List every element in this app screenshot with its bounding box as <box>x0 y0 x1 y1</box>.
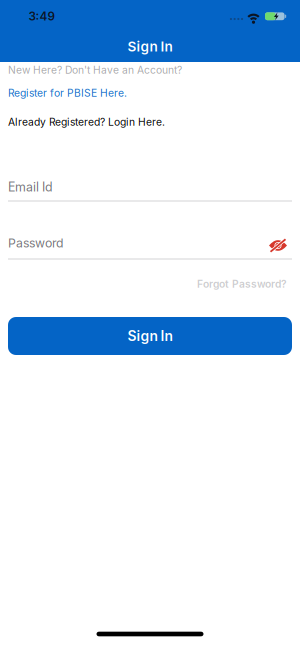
staticText: Forgot Password? <box>197 278 287 290</box>
button[interactable]: Forgot Password? <box>8 278 287 290</box>
staticText: Sign In <box>127 328 172 344</box>
staticText: Sign In <box>127 38 172 55</box>
staticText: 3:49 <box>28 9 55 23</box>
staticText: Email Id <box>8 179 53 194</box>
button[interactable]: New Here? Don't Have an Account? <box>8 64 300 76</box>
staticText: Already Registered? Login Here. <box>8 116 165 128</box>
button[interactable] <box>268 237 288 253</box>
staticText: New Here? Don't Have an Account? <box>8 64 182 76</box>
staticText: Password <box>8 236 64 250</box>
button[interactable]: Register for PBISE Here. <box>8 87 300 99</box>
button[interactable]: Sign In <box>8 317 292 355</box>
staticText: Register for PBISE Here. <box>8 87 127 99</box>
